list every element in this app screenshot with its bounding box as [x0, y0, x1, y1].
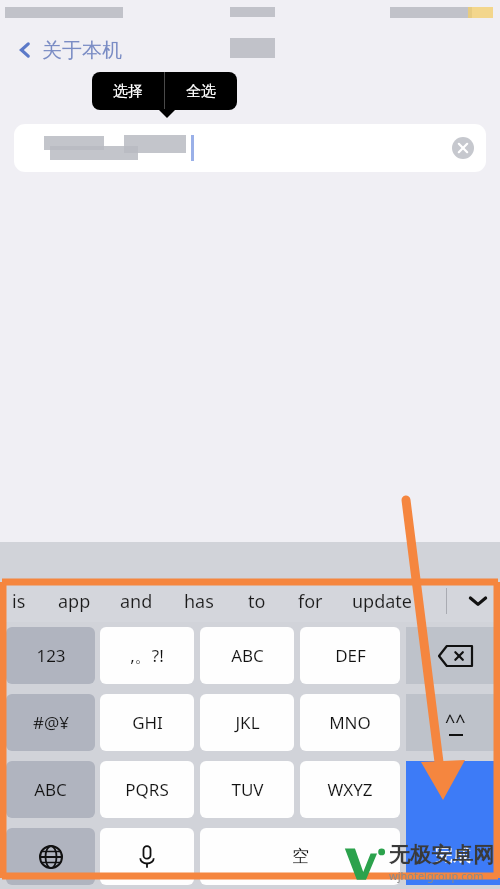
- button[interactable]: Emoticon: [406, 694, 500, 751]
- button[interactable]: MNO: [300, 694, 400, 751]
- staticText: app: [58, 589, 91, 614]
- button[interactable]: app: [58, 580, 91, 622]
- button[interactable]: Voice input: [100, 828, 194, 885]
- staticText: ^^: [445, 709, 466, 734]
- staticText: has: [184, 589, 214, 614]
- button[interactable]: PQRS: [100, 761, 194, 818]
- button[interactable]: 选择: [92, 72, 164, 110]
- button[interactable]: Backspace: [406, 627, 500, 684]
- staticText: is: [12, 589, 26, 614]
- staticText: #@¥: [33, 711, 69, 734]
- staticText: 全选: [186, 82, 216, 101]
- staticText: 空: [292, 846, 309, 867]
- staticText: ABC: [231, 644, 264, 667]
- staticText: 无极安卓网: [389, 842, 494, 868]
- button[interactable]: 空: [200, 828, 400, 885]
- staticText: TUV: [231, 778, 264, 801]
- button[interactable]: Collapse suggestions: [456, 580, 500, 622]
- staticText: 选择: [113, 82, 143, 101]
- button[interactable]: #@¥: [6, 694, 95, 751]
- button[interactable]: GHI: [100, 694, 194, 751]
- button[interactable]: 完成: [406, 761, 500, 885]
- staticText: to: [248, 589, 266, 614]
- staticText: update: [352, 589, 413, 614]
- staticText: for: [298, 589, 323, 614]
- button[interactable]: DEF: [300, 627, 400, 684]
- staticText: 关于本机: [42, 38, 122, 63]
- button[interactable]: ABC: [200, 627, 294, 684]
- button[interactable]: is: [12, 580, 26, 622]
- staticText: wjhotelgroup.com: [389, 868, 484, 883]
- button[interactable]: WXYZ: [300, 761, 400, 818]
- button[interactable]: and: [120, 580, 153, 622]
- button[interactable]: has: [184, 580, 214, 622]
- staticText: PQRS: [125, 778, 169, 801]
- button[interactable]: Clear: [452, 137, 474, 159]
- button[interactable]: update: [352, 580, 413, 622]
- button[interactable]: for: [298, 580, 323, 622]
- button[interactable]: Switch language: [6, 828, 95, 885]
- staticText: 123: [36, 644, 66, 667]
- staticText: MNO: [329, 711, 371, 734]
- staticText: ABC: [34, 778, 67, 801]
- button[interactable]: ,。?!: [100, 627, 194, 684]
- button[interactable]: JKL: [200, 694, 294, 751]
- other: Back: [16, 41, 34, 59]
- button[interactable]: TUV: [200, 761, 294, 818]
- button[interactable]: Back: [10, 30, 128, 70]
- button[interactable]: 123: [6, 627, 95, 684]
- staticText: JKL: [235, 711, 260, 734]
- staticText: and: [120, 589, 153, 614]
- button[interactable]: to: [248, 580, 266, 622]
- button[interactable]: Clear: [14, 124, 486, 172]
- staticText: 完成: [435, 844, 471, 867]
- staticText: DEF: [335, 644, 366, 667]
- button[interactable]: ABC: [6, 761, 95, 818]
- staticText: WXYZ: [327, 778, 373, 801]
- staticText: ,。?!: [130, 644, 164, 667]
- button[interactable]: 全选: [165, 72, 237, 110]
- staticText: GHI: [132, 711, 163, 734]
